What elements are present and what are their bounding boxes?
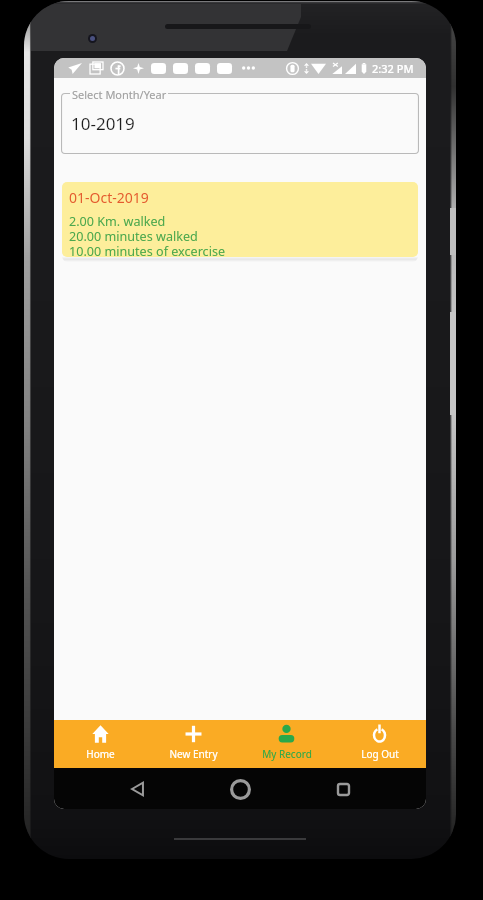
button[interactable]: My Record (240, 720, 333, 768)
button[interactable]: 01-Oct-2019 (62, 182, 418, 257)
staticText: 2.00 Km. walked (69, 213, 166, 230)
staticText: My Record (262, 747, 312, 761)
button[interactable]: Home (227, 776, 253, 802)
button[interactable]: New Entry (147, 720, 240, 768)
staticText: Home (86, 747, 115, 761)
staticText: Select Month/Year (72, 87, 167, 102)
button[interactable]: Recent apps (330, 776, 356, 802)
button[interactable]: Back (124, 776, 150, 802)
button[interactable]: Log Out (333, 720, 426, 768)
staticText: 10-2019 (71, 112, 135, 135)
staticText: New Entry (169, 747, 218, 761)
staticText: 2:32 PM (372, 61, 414, 76)
button[interactable]: Home (54, 720, 147, 768)
button[interactable]: 10-2019 (61, 93, 419, 154)
staticText: 01-Oct-2019 (69, 188, 149, 207)
staticText: 20.00 minutes walked (69, 228, 198, 245)
staticText: 10.00 minutes of excercise (69, 243, 226, 257)
staticText: Log Out (361, 747, 399, 761)
